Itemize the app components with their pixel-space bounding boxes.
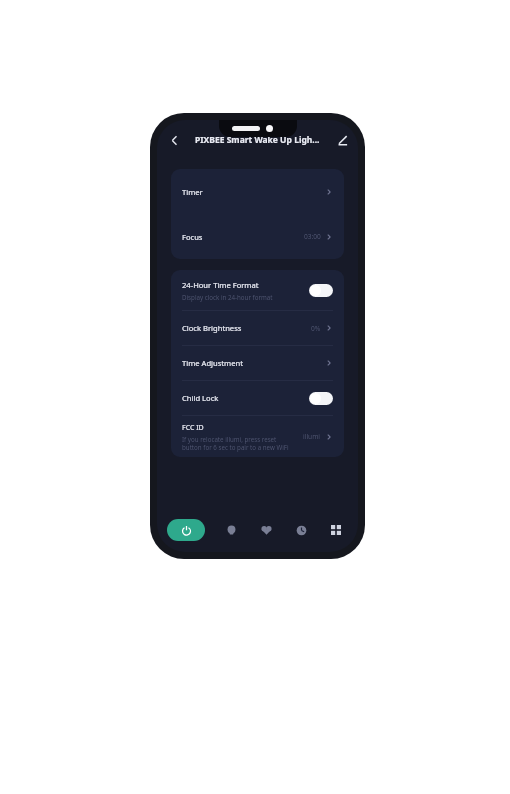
staticText: 0% bbox=[311, 324, 321, 333]
staticText: button for 6 sec to pair to a new WiFi bbox=[182, 443, 289, 451]
staticText: Clock Brightness bbox=[182, 323, 311, 333]
button[interactable]: Clock Brightness bbox=[171, 311, 344, 345]
button[interactable]: Time Adjustment bbox=[171, 346, 344, 380]
button[interactable]: Child Lock bbox=[171, 381, 344, 415]
staticText: Display clock in 24-hour format bbox=[182, 293, 273, 301]
button[interactable]: More bbox=[326, 520, 346, 540]
button[interactable]: Schedule bbox=[291, 520, 311, 540]
staticText: Focus bbox=[182, 232, 304, 242]
button[interactable]: FCC ID bbox=[171, 416, 344, 457]
button[interactable]: Light bbox=[221, 520, 241, 540]
staticText: Time Adjustment bbox=[182, 358, 325, 368]
staticText: PIXBEE Smart Wake Up Ligh... bbox=[195, 134, 320, 146]
staticText: 24-Hour Time Format bbox=[182, 280, 259, 290]
staticText: FCC ID bbox=[182, 423, 204, 433]
staticText: Child Lock bbox=[182, 393, 309, 403]
staticText: 03:00 bbox=[304, 232, 321, 241]
button[interactable]: Toggle bbox=[309, 392, 333, 405]
button[interactable]: Back bbox=[162, 128, 186, 152]
staticText: illumi bbox=[303, 432, 321, 441]
button[interactable]: Focus bbox=[171, 214, 344, 259]
button[interactable]: Toggle bbox=[309, 284, 333, 297]
button[interactable]: 24-Hour Time Format bbox=[171, 270, 344, 310]
staticText: If you relocate illumi, press reset bbox=[182, 435, 277, 443]
staticText: Timer bbox=[182, 187, 325, 197]
button[interactable]: Favorites bbox=[256, 520, 276, 540]
button[interactable]: Timer bbox=[171, 169, 344, 214]
button[interactable]: Power bbox=[167, 519, 205, 541]
button[interactable]: Edit bbox=[331, 129, 353, 151]
